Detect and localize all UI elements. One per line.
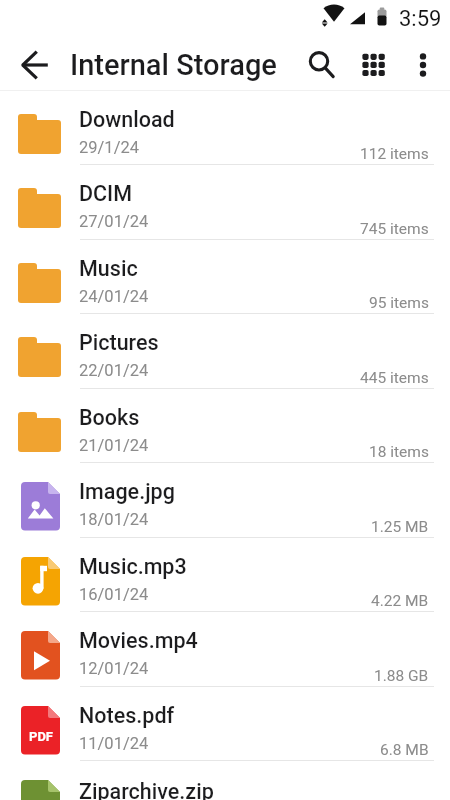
staticText: 22/01/24 [79, 361, 149, 380]
staticText: Image.jpg [79, 479, 175, 504]
staticText: 29/1/24 [79, 138, 139, 157]
staticText: 445 items [360, 369, 429, 387]
staticText: 95 items [369, 294, 429, 312]
staticText: 1.88 GB [374, 667, 429, 685]
staticText: 11/01/24 [79, 734, 149, 753]
button[interactable]: Image.jpg [0, 463, 450, 538]
button[interactable] [352, 43, 396, 87]
button[interactable] [401, 43, 445, 87]
staticText: 745 items [360, 220, 429, 238]
staticText: 27/01/24 [79, 212, 149, 231]
staticText: 112 items [360, 145, 429, 163]
staticText: Download [79, 107, 175, 132]
staticText: Ziparchive.zip [79, 779, 214, 800]
staticText: Books [79, 405, 140, 430]
button[interactable]: Music.mp3 [0, 538, 450, 612]
staticText: 16/01/24 [79, 585, 149, 604]
staticText: 18/01/24 [79, 510, 149, 529]
button[interactable]: PDF [0, 687, 450, 761]
staticText: Music [79, 256, 138, 281]
staticText: PDF [29, 729, 53, 744]
staticText: Internal Storage [70, 48, 277, 82]
button[interactable]: Books [0, 389, 450, 463]
button[interactable]: Music [0, 240, 450, 314]
staticText: 21/01/24 [79, 436, 149, 455]
button[interactable] [13, 43, 57, 87]
button[interactable]: Movies.mp4 [0, 612, 450, 687]
button[interactable]: Download [0, 91, 450, 165]
staticText: 12/01/24 [79, 659, 149, 678]
button[interactable]: Pictures [0, 314, 450, 389]
button[interactable]: DCIM [0, 165, 450, 240]
staticText: 3:59 [399, 6, 442, 32]
staticText: 24/01/24 [79, 287, 149, 306]
staticText: Notes.pdf [79, 703, 175, 728]
button[interactable] [298, 43, 342, 87]
staticText: Pictures [79, 330, 159, 355]
staticText: 4.22 MB [371, 592, 429, 610]
staticText: 18 items [369, 443, 429, 461]
staticText: DCIM [79, 181, 132, 206]
staticText: Music.mp3 [79, 554, 187, 579]
staticText: 6.8 MB [380, 741, 429, 759]
button[interactable]: Ziparchive.zip [0, 761, 450, 800]
staticText: Movies.mp4 [79, 628, 198, 653]
staticText: 1.25 MB [371, 518, 429, 536]
